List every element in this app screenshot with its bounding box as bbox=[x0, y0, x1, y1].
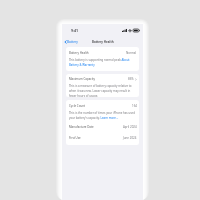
staticText: Manufacture Date bbox=[69, 125, 94, 129]
staticText: Cycle Count bbox=[69, 104, 86, 108]
staticText: This battery is supporting normal peak A… bbox=[69, 58, 130, 66]
staticText: Normal bbox=[126, 51, 137, 55]
staticText: First Use bbox=[69, 136, 81, 140]
staticText: June 2024 bbox=[123, 136, 137, 140]
staticText: 86% bbox=[128, 77, 134, 81]
staticText: This is a measure of battery capacity re… bbox=[69, 84, 132, 97]
staticText: Maximum Capacity bbox=[69, 77, 95, 81]
button[interactable]: Battery Health bbox=[69, 47, 137, 58]
staticText: April 2024 bbox=[123, 125, 137, 129]
button[interactable]: First Use bbox=[69, 132, 137, 143]
staticText: Battery bbox=[67, 40, 78, 44]
staticText: This is the number of times your iPhone … bbox=[69, 111, 136, 119]
staticText: 164 bbox=[132, 104, 137, 108]
staticText: Battery Health bbox=[92, 40, 114, 44]
button[interactable]: Cycle Count bbox=[69, 100, 137, 111]
staticText: Battery Health bbox=[69, 51, 89, 55]
staticText: 9:41 bbox=[71, 28, 79, 33]
button[interactable]: Maximum Capacity bbox=[69, 74, 137, 84]
button[interactable]: Manufacture Date bbox=[69, 121, 137, 132]
button[interactable]: Battery bbox=[64, 40, 78, 44]
